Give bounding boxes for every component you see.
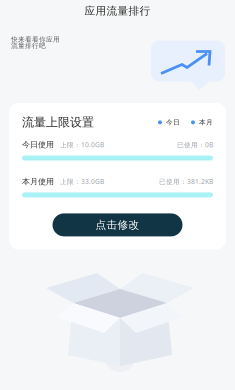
staticText: 已使用：0B — [177, 140, 213, 149]
staticText: 应用流量排行 — [84, 4, 150, 17]
button[interactable]: 点击修改 — [52, 213, 182, 236]
staticText: 点击修改 — [95, 218, 139, 231]
staticText: 本月使用 — [22, 177, 54, 186]
staticText: 上限：33.0GB — [60, 177, 104, 186]
staticText: 今日使用 — [22, 140, 54, 149]
staticText: 本月 — [199, 118, 213, 126]
staticText: 今日 — [166, 118, 180, 126]
staticText: 已使用：381.2KB — [159, 177, 213, 186]
staticText: 流量上限设置 — [22, 115, 94, 130]
staticText: 快来看看你应用 — [11, 35, 60, 44]
staticText: 流量排行吧 — [11, 42, 46, 50]
staticText: 上限：10.0GB — [60, 140, 104, 149]
